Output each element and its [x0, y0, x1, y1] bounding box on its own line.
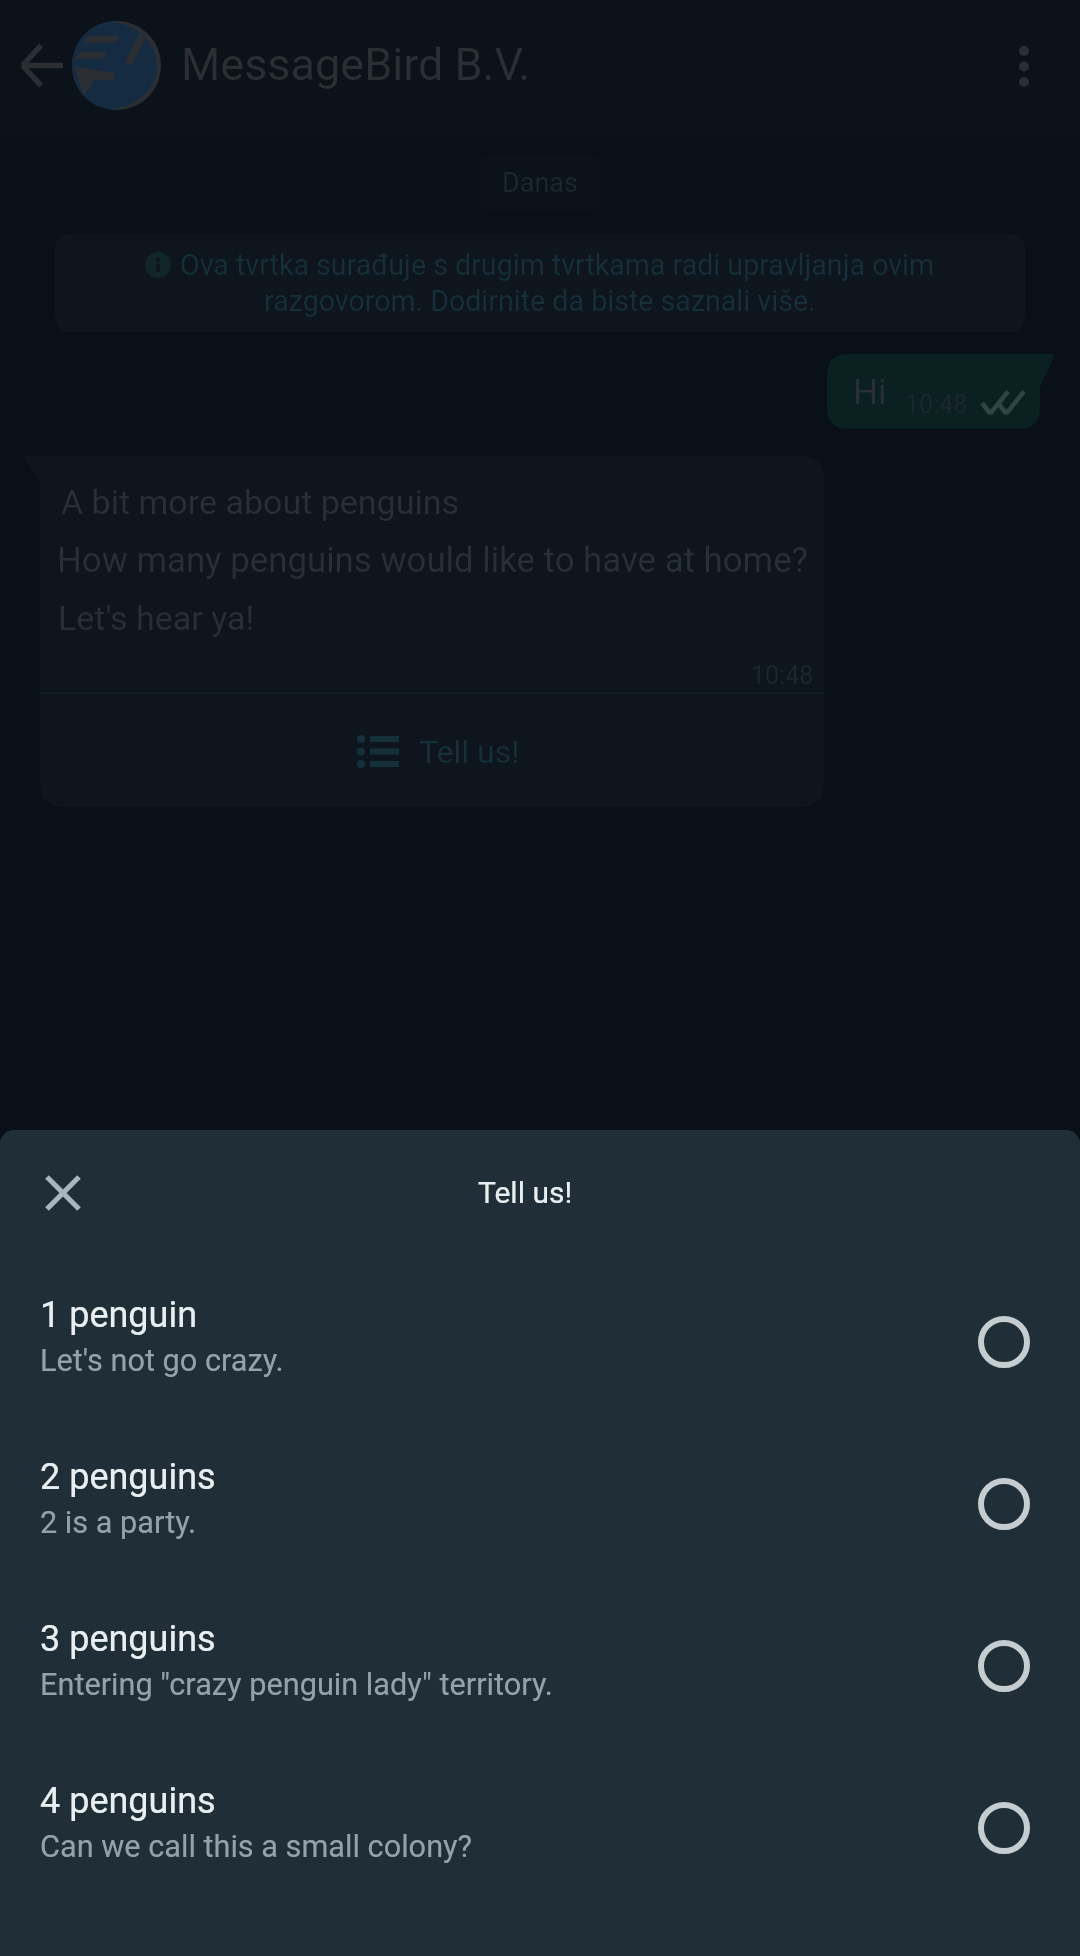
button[interactable]: 4 penguins [0, 1747, 1080, 1909]
staticText: Entering "crazy penguin lady" territory. [40, 1667, 553, 1703]
staticText: 10:48 [751, 661, 814, 690]
button[interactable]: Back [11, 35, 72, 96]
staticText: 10:48 [905, 390, 968, 419]
button[interactable]: More options [984, 26, 1064, 106]
staticText: How many penguins would like to have at … [57, 540, 809, 581]
staticText: Hi [853, 372, 887, 413]
button[interactable]: Ova tvrtka surađuje s drugim tvrtkama ra… [55, 234, 1025, 332]
staticText: Tell us! [478, 1175, 573, 1210]
button[interactable]: Close [18, 1148, 108, 1238]
staticText: Let's hear ya! [58, 598, 255, 638]
staticText: MessageBird B.V. [181, 38, 531, 91]
button[interactable]: Select 1 penguin [959, 1297, 1049, 1387]
button[interactable]: 3 penguins [0, 1585, 1080, 1747]
staticText: A bit more about penguins [61, 482, 460, 522]
staticText: 2 is a party. [40, 1505, 197, 1541]
button[interactable]: Select 4 penguins [959, 1783, 1049, 1873]
button[interactable]: 1 penguin [0, 1261, 1080, 1423]
staticText: 2 penguins [40, 1456, 216, 1498]
button[interactable]: 2 penguins [0, 1423, 1080, 1585]
staticText: Can we call this a small colony? [40, 1829, 473, 1865]
staticText: 1 penguin [40, 1294, 198, 1336]
staticText: Tell us! [419, 733, 520, 771]
staticText: Danas [502, 167, 578, 199]
button[interactable]: Select 2 penguins [959, 1459, 1049, 1549]
staticText: Let's not go crazy. [40, 1343, 284, 1379]
button[interactable]: Tell us! [46, 695, 830, 808]
staticText: Ova tvrtka surađuje s drugim tvrtkama ra… [180, 248, 935, 282]
staticText: 3 penguins [40, 1618, 216, 1660]
staticText: razgovorom. Dodirnite da biste saznali v… [264, 284, 816, 318]
button[interactable]: Select 3 penguins [959, 1621, 1049, 1711]
staticText: 4 penguins [40, 1780, 216, 1822]
